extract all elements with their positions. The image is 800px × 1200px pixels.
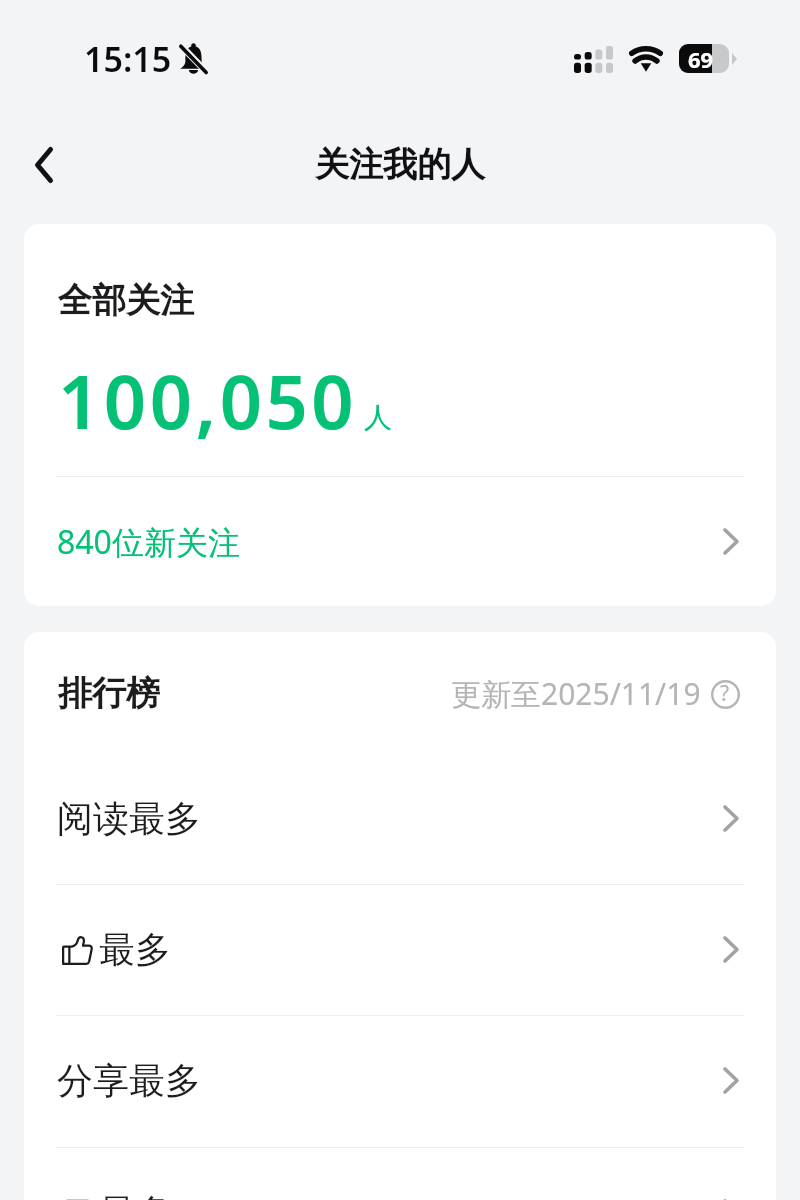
staticText: 100,050: [58, 350, 358, 451]
staticText: 840位新关注: [57, 520, 240, 564]
staticText: 分享最多: [57, 1058, 201, 1103]
staticText: 排行榜: [58, 672, 160, 715]
staticText: 15:15: [84, 36, 172, 82]
button[interactable]: Back: [12, 133, 76, 197]
button[interactable]: 分享最多: [24, 1015, 776, 1146]
button[interactable]: 840位新关注: [24, 477, 776, 606]
staticText: 69: [688, 44, 714, 73]
staticText: 阅读最多: [57, 796, 201, 841]
button[interactable]: Help: [710, 679, 740, 709]
staticText: 关注我的人: [315, 143, 485, 186]
staticText: 更新至2025/11/19: [451, 673, 701, 714]
button[interactable]: 阅读最多: [24, 753, 776, 884]
button[interactable]: 最多: [24, 1147, 776, 1200]
staticText: 人: [364, 400, 392, 435]
staticText: ?: [720, 679, 730, 708]
staticText: 全部关注: [58, 279, 194, 322]
staticText: 最多: [99, 1190, 171, 1200]
button[interactable]: 最多: [24, 884, 776, 1015]
staticText: 最多: [99, 927, 171, 972]
